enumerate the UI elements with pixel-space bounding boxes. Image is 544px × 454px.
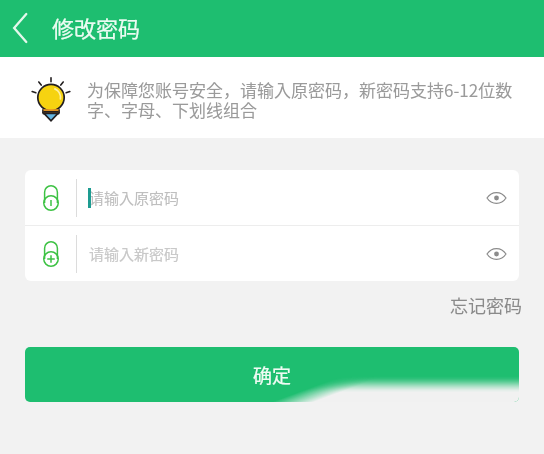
- button[interactable]: Show password: [474, 232, 518, 276]
- button[interactable]: 确定: [25, 347, 519, 402]
- button[interactable]: 忘记密码: [450, 292, 522, 318]
- button[interactable]: Show password: [474, 176, 518, 220]
- staticText: 修改密码: [52, 11, 141, 43]
- staticText: 确定: [253, 361, 292, 389]
- button[interactable]: Back: [0, 7, 44, 51]
- staticText: 为保障您账号安全，请输入原密码，新密码支持6-12位数字、字母、下划线组合: [87, 77, 533, 122]
- button[interactable]: 请输入原密码: [25, 170, 519, 225]
- staticText: 请输入原密码: [89, 187, 180, 209]
- button[interactable]: 请输入新密码: [25, 226, 519, 281]
- staticText: 请输入新密码: [89, 243, 180, 265]
